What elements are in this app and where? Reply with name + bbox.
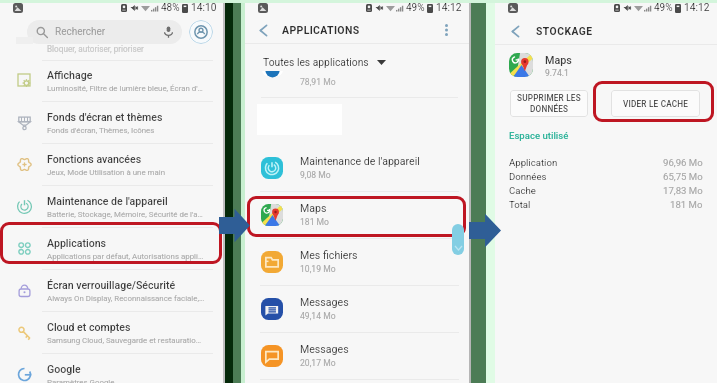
- button[interactable]: Fonctions avancées: [0, 144, 224, 186]
- staticText: Cache: [509, 185, 536, 196]
- staticText: Mes fichiers: [300, 249, 358, 261]
- staticText: Total: [509, 199, 531, 210]
- staticText: Espace utilisé: [509, 130, 569, 141]
- staticText: 96,96 Mo: [663, 157, 703, 168]
- staticText: Fonctions avancées: [47, 153, 142, 165]
- staticText: Paramètres Google: [47, 378, 115, 383]
- staticText: 9.74.1: [545, 68, 569, 78]
- button[interactable]: Compte: [189, 20, 213, 44]
- button[interactable]: Toutes les applications: [259, 52, 390, 72]
- button[interactable]: Retour: [254, 21, 272, 39]
- staticText: 78,91 Mo: [300, 77, 336, 87]
- staticText: 14:12: [436, 2, 462, 14]
- staticText: Maintenance de l'appareil: [300, 155, 420, 167]
- button[interactable]: Rechercher: [27, 20, 182, 44]
- button[interactable]: Applications: [0, 228, 224, 270]
- staticText: Maps: [545, 54, 572, 67]
- button[interactable]: Retour: [506, 22, 524, 40]
- button[interactable]: Maps: [245, 192, 469, 239]
- staticText: Batterie, Stockage, Mémoire, Sécurité de…: [47, 210, 203, 219]
- staticText: Toutes les applications: [263, 56, 369, 68]
- staticText: 49%: [406, 2, 425, 14]
- staticText: 49%: [654, 2, 673, 14]
- staticText: 9,08 Mo: [300, 170, 331, 180]
- staticText: SUPPRIMER LES: [517, 93, 581, 103]
- staticText: 17,83 Mo: [663, 185, 703, 196]
- button[interactable]: Google: [0, 354, 224, 383]
- staticText: Messages: [300, 343, 349, 355]
- staticText: Applications: [47, 237, 107, 249]
- staticText: Données: [509, 171, 547, 182]
- button[interactable]: Messages: [245, 333, 469, 380]
- staticText: VIDER LE CACHE: [623, 99, 689, 109]
- button[interactable]: Plus d'options: [438, 22, 454, 38]
- staticText: Messages: [300, 296, 349, 308]
- staticText: Maintenance de l'appareil: [47, 195, 168, 207]
- button[interactable]: Écran verrouillage/Sécurité: [0, 270, 224, 312]
- staticText: APPLICATIONS: [282, 24, 360, 36]
- staticText: Google: [47, 363, 81, 375]
- staticText: Applications par défaut, Autorisations a…: [47, 252, 204, 261]
- staticText: Affichage: [47, 69, 93, 81]
- button[interactable]: Affichage: [0, 60, 224, 102]
- staticText: 49,14 Mo: [300, 311, 336, 321]
- staticText: 65,75 Mo: [663, 171, 703, 182]
- staticText: 10,19 Mo: [300, 264, 336, 274]
- staticText: Écran verrouillage/Sécurité: [47, 279, 176, 291]
- staticText: Always On Display, Reconnaissance facial…: [47, 294, 205, 303]
- staticText: Fonds d'écran, Thèmes, Icônes: [47, 126, 155, 135]
- staticText: Jeux, Mode Utilisation à une main: [47, 168, 166, 177]
- staticText: DONNÉES: [530, 104, 569, 114]
- staticText: 20,17 Mo: [300, 358, 336, 368]
- staticText: Maps: [300, 202, 327, 214]
- staticText: Bloquer, autoriser, prioriser: [47, 44, 144, 54]
- button[interactable]: SUPPRIMER LES: [510, 90, 588, 117]
- button[interactable]: Fonds d'écran et thèmes: [0, 102, 224, 144]
- staticText: 181 Mo: [300, 217, 330, 227]
- staticText: 14:12: [684, 2, 710, 14]
- button[interactable]: Messages: [245, 286, 469, 333]
- button[interactable]: Mes fichiers: [245, 239, 469, 286]
- staticText: 48%: [161, 2, 180, 14]
- button[interactable]: Cloud et comptes: [0, 312, 224, 354]
- button[interactable]: Maintenance de l'appareil: [245, 145, 469, 192]
- staticText: Luminosité, Filtre de lumière bleue, Écr…: [47, 84, 203, 93]
- staticText: Cloud et comptes: [47, 321, 131, 333]
- staticText: 14:10: [191, 2, 217, 14]
- staticText: Rechercher: [55, 26, 106, 38]
- staticText: Application: [509, 157, 558, 168]
- staticText: 181 Mo: [670, 199, 703, 210]
- staticText: Fonds d'écran et thèmes: [47, 111, 163, 123]
- button[interactable]: VIDER LE CACHE: [611, 90, 700, 117]
- other: Recherche vocale: [164, 26, 173, 38]
- button[interactable]: Maintenance de l'appareil: [0, 186, 224, 228]
- staticText: STOCKAGE: [536, 25, 593, 37]
- staticText: Samsung Cloud, Sauvegarde et restauratio…: [47, 336, 202, 345]
